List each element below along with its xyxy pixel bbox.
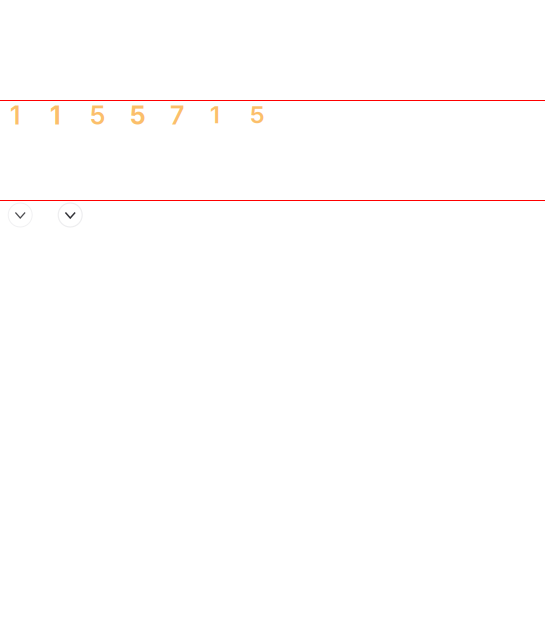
staticText: 5 <box>90 100 105 131</box>
staticText: 1 <box>50 100 61 131</box>
staticText: 5 <box>250 100 265 129</box>
staticText: 1 <box>210 100 220 129</box>
staticText: 5 <box>130 100 146 131</box>
staticText: 1 <box>10 100 20 131</box>
staticText: 7 <box>170 100 184 131</box>
